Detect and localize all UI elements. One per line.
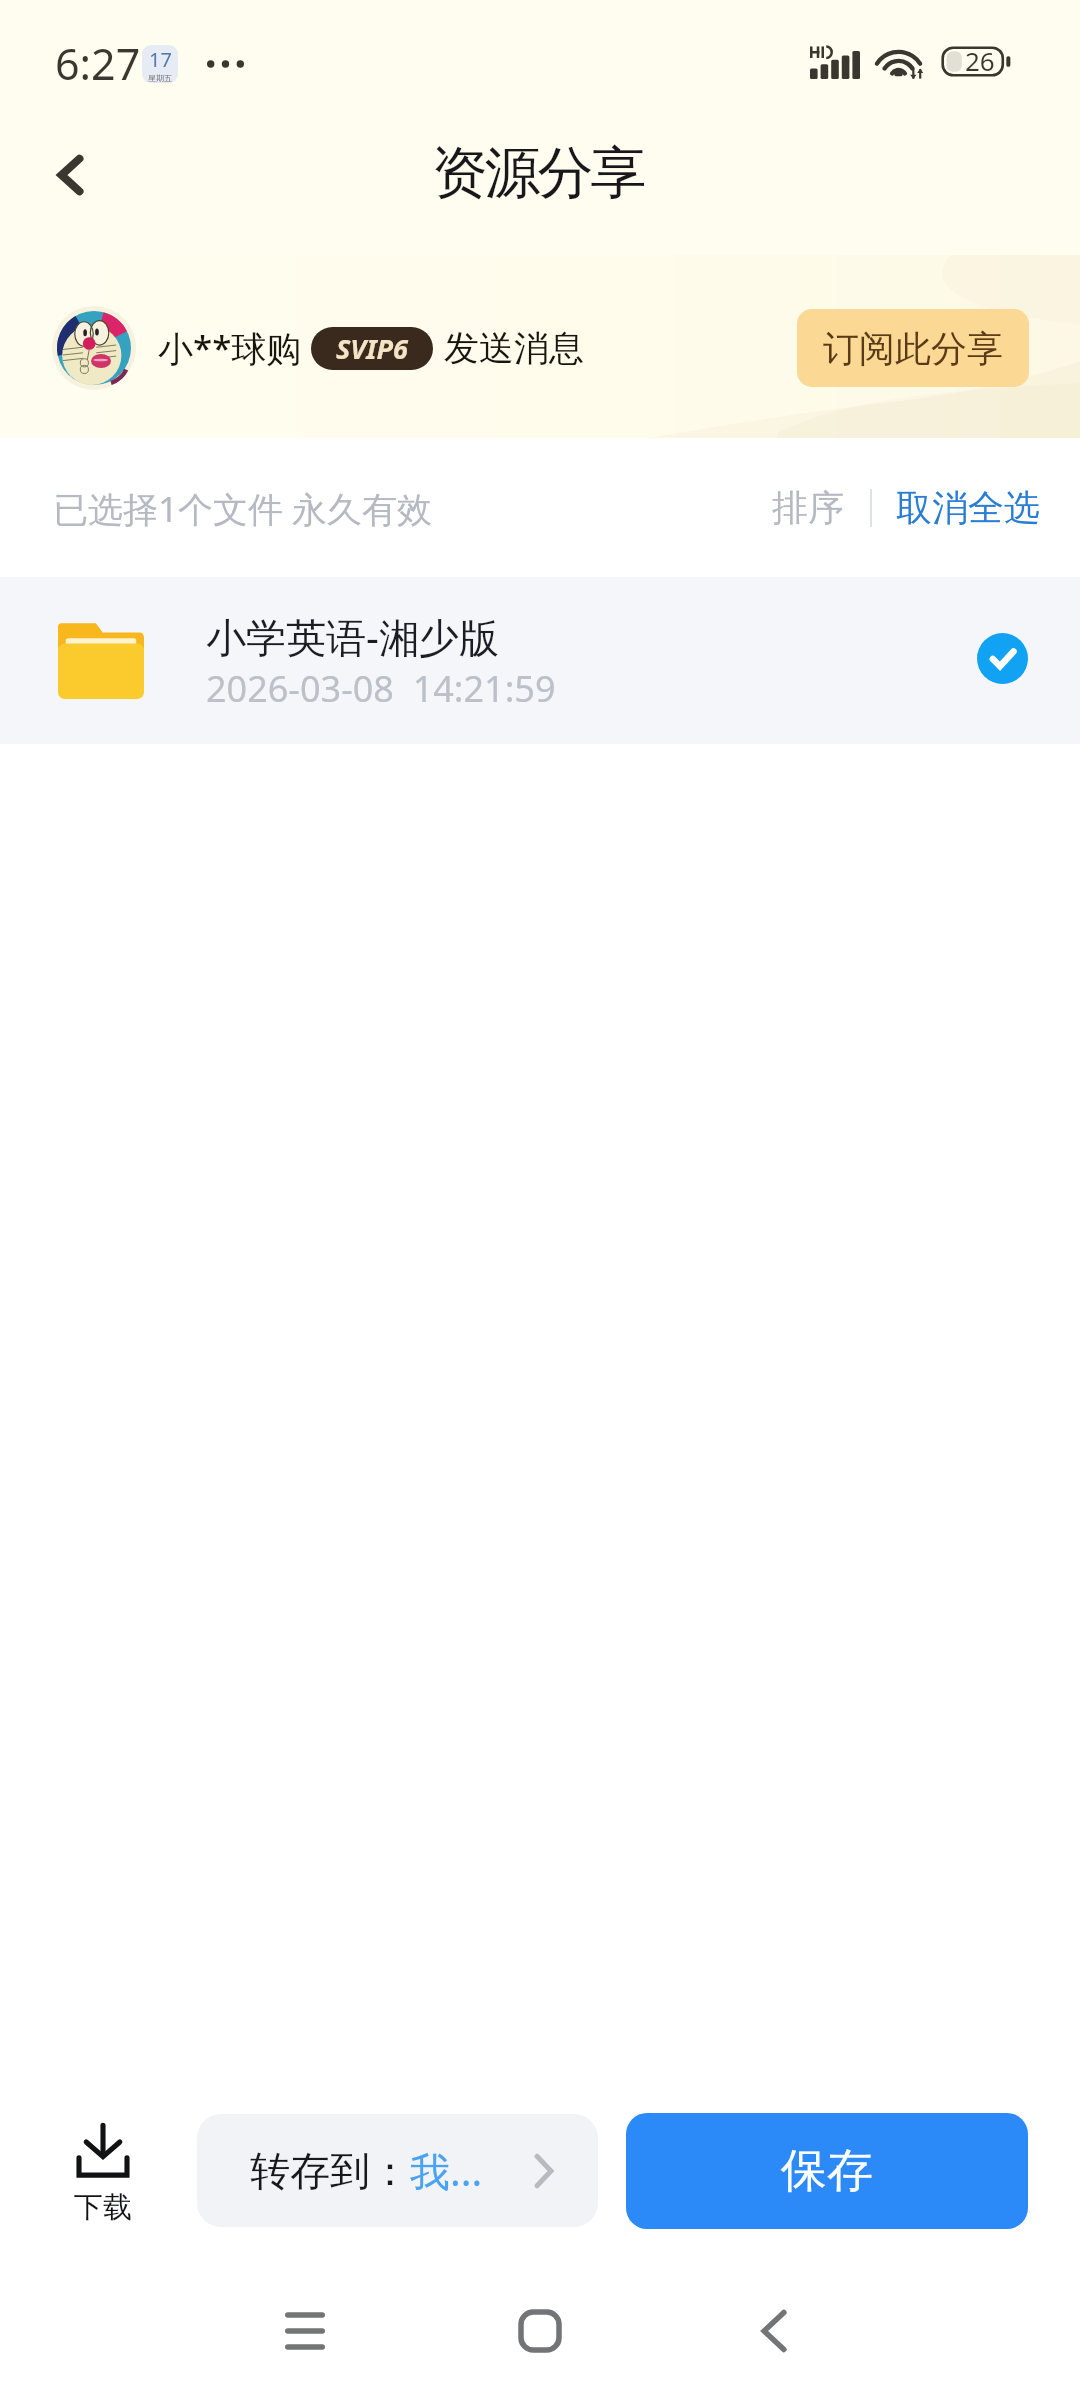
staticText: 转存到： bbox=[250, 2146, 410, 2196]
staticText: 2026-03-08 14:21:59 bbox=[206, 664, 556, 713]
staticText: 6:27 bbox=[55, 34, 141, 93]
button[interactable]: Back bbox=[705, 2268, 843, 2393]
staticText: 17 bbox=[149, 46, 172, 73]
button[interactable]: Back bbox=[18, 123, 122, 227]
staticText: 下载 bbox=[74, 2189, 132, 2226]
button[interactable]: 取消全选 bbox=[894, 475, 1042, 540]
staticText: 订阅此分享 bbox=[823, 326, 1003, 371]
button[interactable]: Home bbox=[471, 2268, 609, 2393]
button[interactable]: 小学英语-湘少版 bbox=[0, 577, 1080, 744]
button[interactable]: Selected bbox=[977, 633, 1028, 684]
staticText: SVIP6 bbox=[336, 330, 408, 367]
button[interactable]: 保存 bbox=[626, 2113, 1028, 2229]
button[interactable]: Recents bbox=[236, 2268, 374, 2393]
staticText: 已选择1个文件 永久有效 bbox=[53, 485, 433, 533]
staticText: 小学英语-湘少版 bbox=[206, 609, 499, 664]
button[interactable]: 订阅此分享 bbox=[797, 309, 1029, 387]
staticText: 发送消息 bbox=[444, 326, 584, 370]
staticText: 保存 bbox=[781, 2142, 873, 2200]
staticText: 星期五 bbox=[148, 73, 172, 83]
staticText: 我... bbox=[410, 2143, 483, 2198]
button[interactable]: 下载 bbox=[69, 2119, 137, 2230]
staticText: 资源分享 bbox=[433, 138, 645, 209]
staticText: 排序 bbox=[772, 485, 844, 530]
staticText: 26 bbox=[965, 43, 995, 78]
button[interactable]: 排序 bbox=[764, 475, 852, 540]
staticText: 小**球购 bbox=[158, 324, 302, 372]
staticText: 取消全选 bbox=[896, 485, 1040, 530]
button[interactable]: 转存到： bbox=[197, 2114, 598, 2227]
